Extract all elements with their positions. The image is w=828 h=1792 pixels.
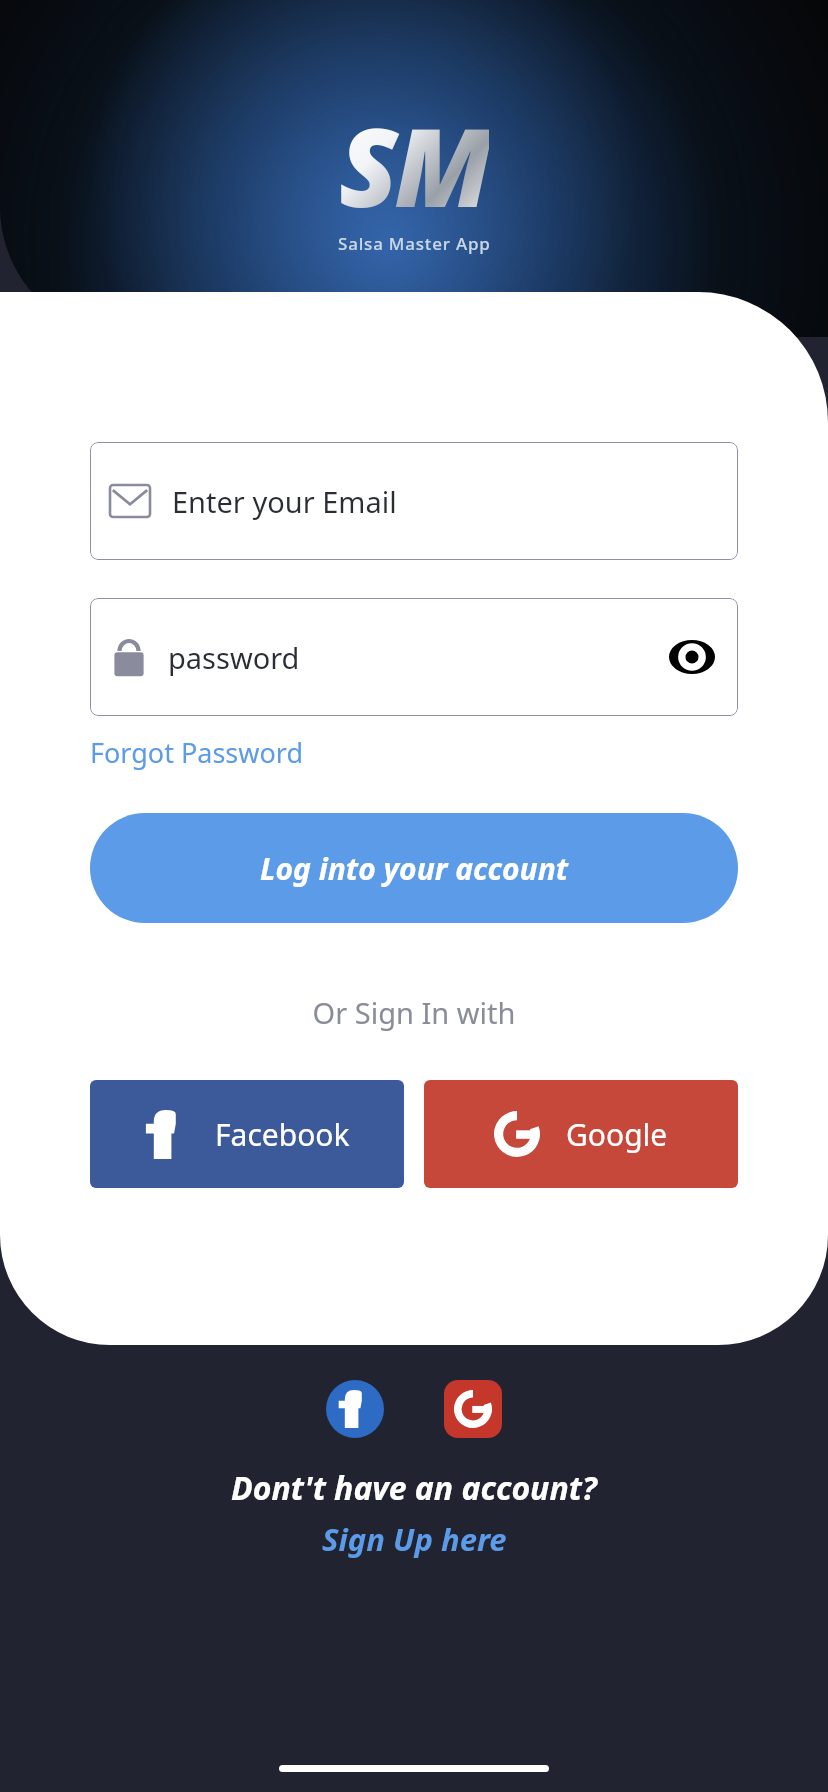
staticText: Enter your Email [172, 482, 397, 521]
staticText: Or Sign In with [90, 993, 738, 1032]
staticText: Salsa Master App [338, 232, 491, 255]
staticText: Log into your account [260, 848, 569, 889]
button[interactable]: Facebook [90, 1080, 404, 1188]
button[interactable]: password [90, 598, 738, 716]
staticText: SM [339, 92, 489, 210]
button[interactable]: Google [424, 1080, 738, 1188]
staticText: Google [566, 1114, 668, 1155]
button[interactable]: Log into your account [90, 813, 738, 923]
staticText: Dont't have an account? [231, 1466, 597, 1510]
button[interactable]: Sign Up here [322, 1518, 507, 1560]
button[interactable]: Enter your Email [90, 442, 738, 560]
staticText: Sign Up here [322, 1518, 507, 1560]
button[interactable]: Sign in with Facebook [326, 1380, 384, 1438]
button[interactable]: Forgot Password [90, 734, 304, 771]
staticText: password [168, 638, 300, 677]
button[interactable]: Show password [664, 629, 720, 685]
button[interactable]: Sign in with Google [444, 1380, 502, 1438]
staticText: Facebook [215, 1114, 350, 1155]
staticText: Forgot Password [90, 734, 304, 771]
